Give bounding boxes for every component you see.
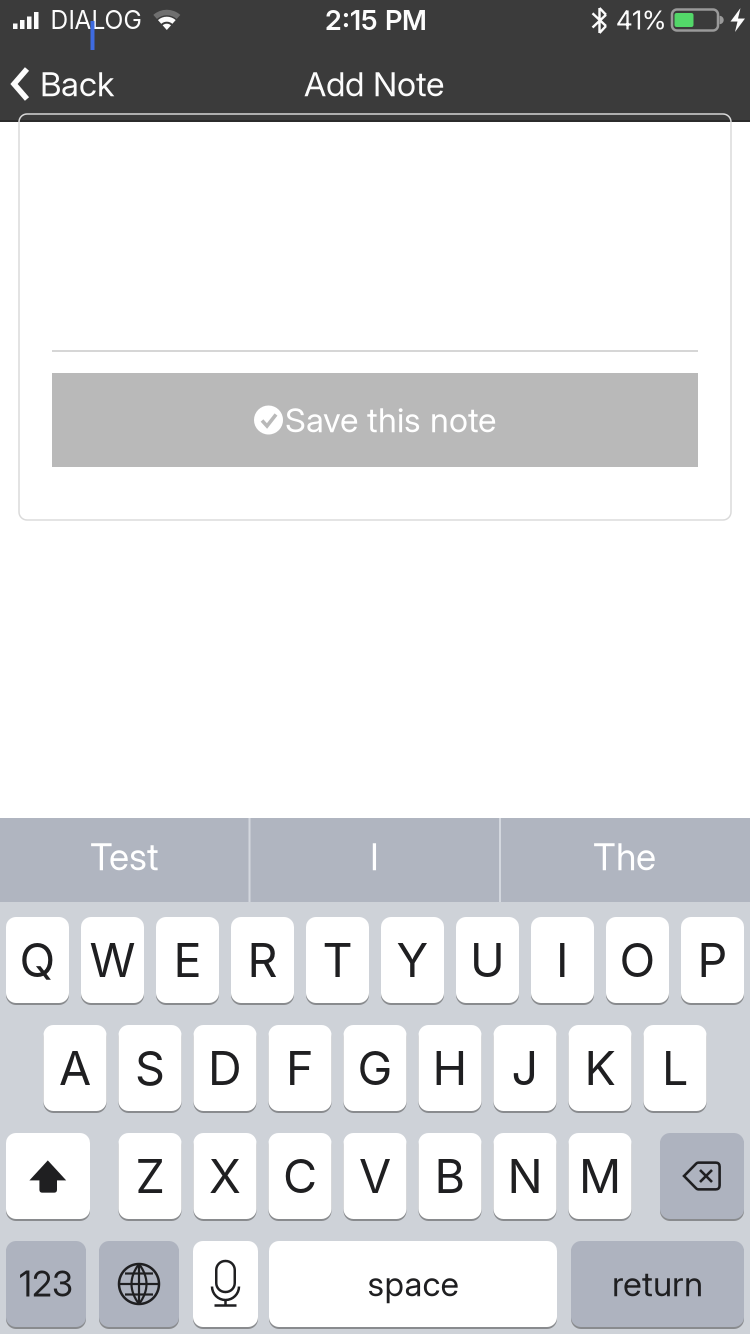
button[interactable]: V <box>343 1132 406 1220</box>
staticText: Y <box>396 932 428 988</box>
button[interactable]: Delete <box>660 1132 744 1220</box>
button[interactable]: J <box>493 1024 556 1112</box>
button[interactable]: A <box>43 1024 106 1112</box>
staticText: H <box>432 1040 467 1096</box>
button[interactable]: N <box>493 1132 556 1220</box>
staticText: N <box>507 1148 542 1204</box>
button[interactable]: X <box>193 1132 256 1220</box>
staticText: Q <box>19 932 55 988</box>
button[interactable]: Q <box>6 916 69 1004</box>
button[interactable]: I <box>531 916 594 1004</box>
staticText: W <box>89 932 135 988</box>
staticText: DIALOG <box>50 5 141 35</box>
staticText: T <box>322 932 352 988</box>
button[interactable]: Back <box>11 53 171 115</box>
button[interactable]: I <box>250 815 498 899</box>
button[interactable]: P <box>681 916 744 1004</box>
button[interactable]: T <box>306 916 369 1004</box>
staticText: U <box>470 932 505 988</box>
staticText: space <box>367 1264 458 1304</box>
staticText: The <box>593 835 656 879</box>
staticText: K <box>584 1040 615 1096</box>
staticText: J <box>511 1040 538 1096</box>
button[interactable]: C <box>268 1132 331 1220</box>
staticText: V <box>359 1148 391 1204</box>
staticText: Back <box>40 64 114 104</box>
staticText: 123 <box>19 1263 73 1305</box>
button[interactable]: B <box>418 1132 481 1220</box>
button[interactable]: Z <box>118 1132 181 1220</box>
staticText: I <box>370 835 379 879</box>
button[interactable]: O <box>606 916 669 1004</box>
staticText: 2:15 PM <box>325 3 427 37</box>
staticText: E <box>173 932 201 988</box>
staticText: Add Note <box>304 64 444 104</box>
button[interactable]: Y <box>381 916 444 1004</box>
button[interactable]: S <box>118 1024 181 1112</box>
staticText: Test <box>90 835 159 879</box>
staticText: A <box>59 1040 91 1096</box>
button[interactable]: F <box>268 1024 331 1112</box>
button[interactable]: E <box>156 916 219 1004</box>
button[interactable]: Test <box>0 815 248 899</box>
staticText: L <box>662 1040 688 1096</box>
button[interactable]: D <box>193 1024 256 1112</box>
staticText: P <box>697 932 727 988</box>
button[interactable]: Save this note <box>52 373 698 467</box>
staticText: R <box>247 932 277 988</box>
staticText: Save this note <box>285 400 496 440</box>
button[interactable]: R <box>231 916 294 1004</box>
button[interactable]: K <box>568 1024 631 1112</box>
button[interactable]: U <box>456 916 519 1004</box>
staticText: G <box>357 1040 392 1096</box>
button[interactable]: return <box>571 1240 744 1328</box>
staticText: B <box>434 1148 465 1204</box>
button[interactable]: Dictation <box>193 1240 258 1328</box>
button[interactable]: The <box>500 815 748 899</box>
staticText: F <box>286 1040 314 1096</box>
button[interactable]: 123 <box>6 1240 86 1328</box>
staticText: 41% <box>616 4 666 36</box>
staticText: O <box>619 932 655 988</box>
button[interactable]: W <box>81 916 144 1004</box>
button[interactable]: Next keyboard <box>99 1240 179 1328</box>
button[interactable]: M <box>568 1132 631 1220</box>
button[interactable]: L <box>643 1024 706 1112</box>
button[interactable]: space <box>269 1240 557 1328</box>
staticText: I <box>556 932 569 988</box>
staticText: S <box>135 1040 165 1096</box>
button[interactable]: G <box>343 1024 406 1112</box>
staticText: return <box>612 1263 703 1304</box>
staticText: Z <box>135 1148 164 1204</box>
button[interactable]: Shift <box>6 1132 90 1220</box>
button[interactable]: H <box>418 1024 481 1112</box>
staticText: D <box>208 1040 242 1096</box>
staticText: X <box>209 1148 241 1204</box>
staticText: M <box>579 1148 621 1204</box>
staticText: C <box>283 1148 317 1204</box>
